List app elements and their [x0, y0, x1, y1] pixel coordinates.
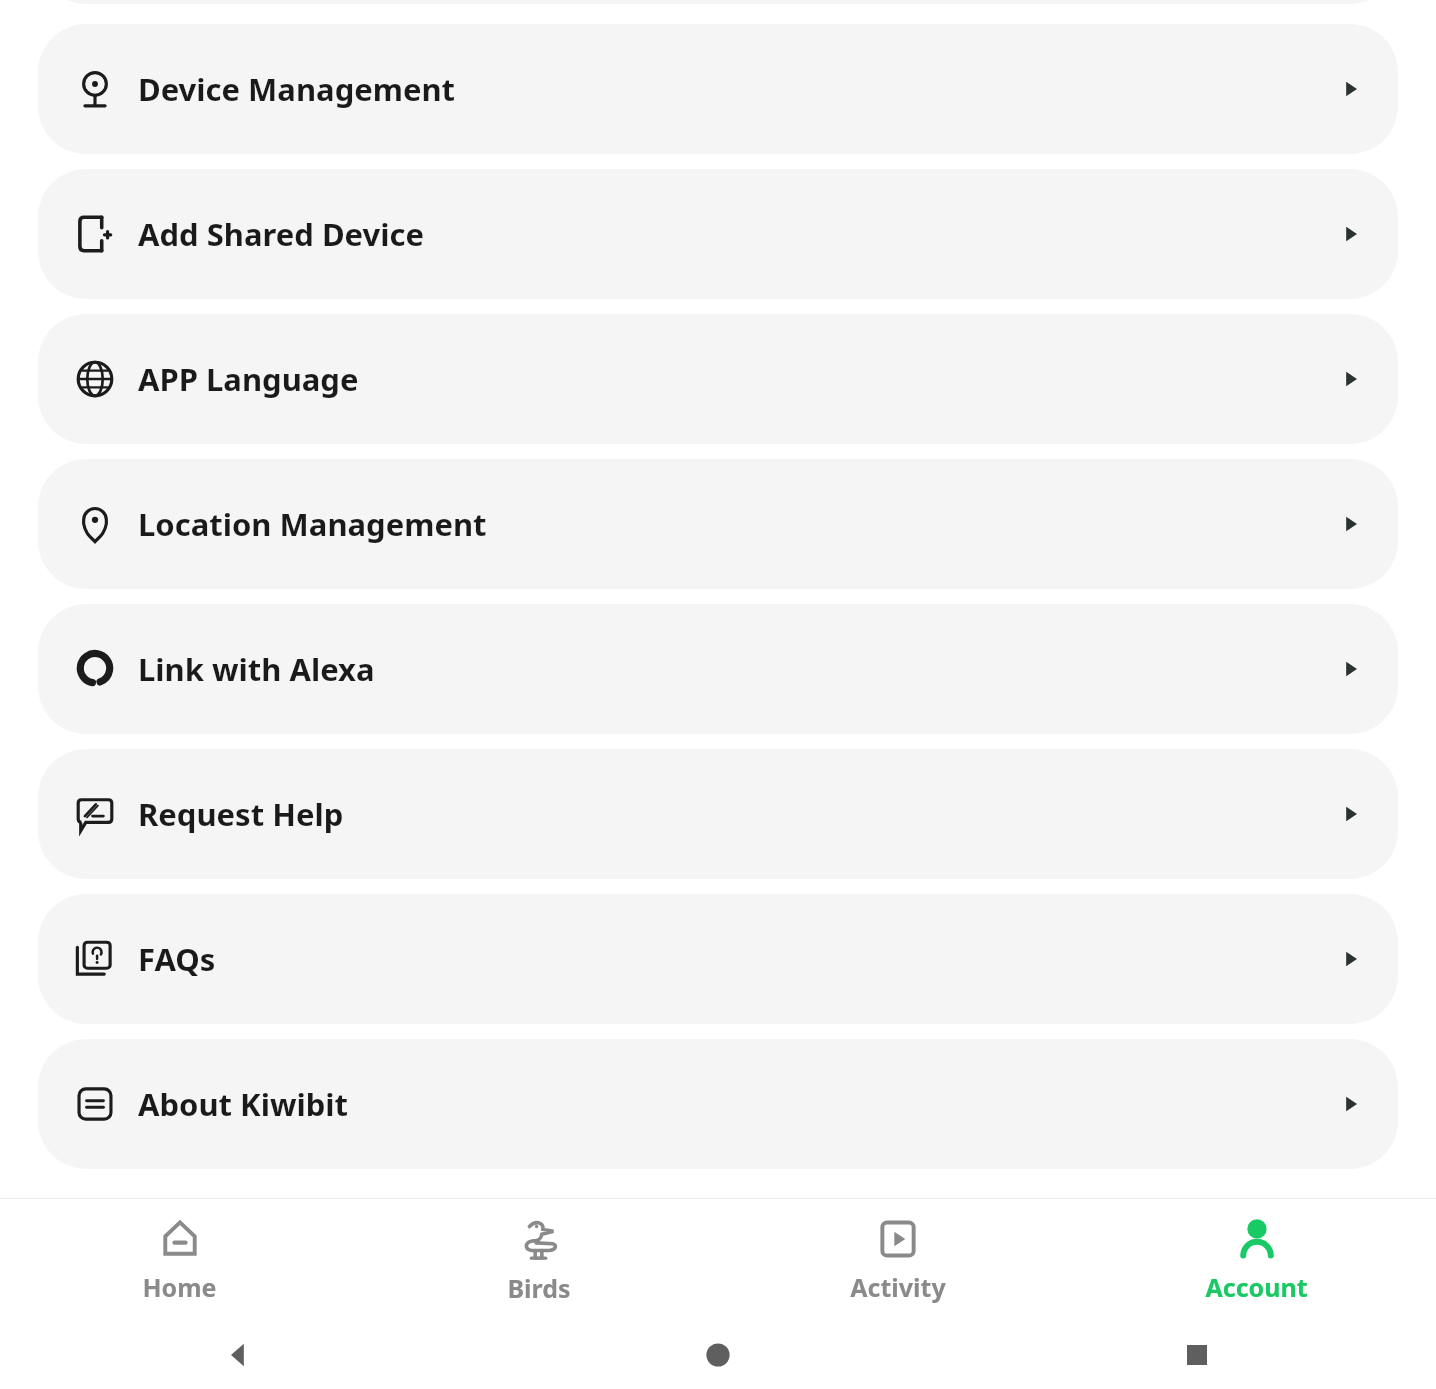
button[interactable]: About Kiwibit — [38, 1039, 1398, 1169]
button[interactable]: APP Language — [38, 314, 1398, 444]
staticText: Home — [142, 1270, 217, 1304]
staticText: FAQs — [138, 938, 216, 980]
staticText: Add Shared Device — [138, 213, 424, 255]
button[interactable]: Home — [0, 1199, 359, 1320]
other: Home — [698, 1335, 738, 1375]
staticText: Birds — [507, 1271, 571, 1305]
staticText: Device Management — [138, 68, 456, 110]
button[interactable]: Activity — [718, 1199, 1077, 1320]
button[interactable]: Request Help — [38, 749, 1398, 879]
button[interactable]: FAQs — [38, 894, 1398, 1024]
other: Recents — [1177, 1335, 1217, 1375]
staticText: Request Help — [138, 793, 344, 835]
button[interactable]: Add Shared Device — [38, 169, 1398, 299]
button[interactable]: Location Management — [38, 459, 1398, 589]
button[interactable]: Account — [1077, 1199, 1436, 1320]
staticText: Activity — [850, 1270, 946, 1304]
staticText: Account — [1205, 1270, 1308, 1304]
other: Back — [219, 1335, 259, 1375]
staticText: Link with Alexa — [138, 648, 375, 690]
staticText: Location Management — [138, 503, 487, 545]
button[interactable]: Link with Alexa — [38, 604, 1398, 734]
button[interactable]: Device Management — [38, 24, 1398, 154]
button[interactable]: Birds — [359, 1199, 718, 1320]
staticText: APP Language — [138, 358, 359, 400]
staticText: About Kiwibit — [138, 1083, 349, 1125]
